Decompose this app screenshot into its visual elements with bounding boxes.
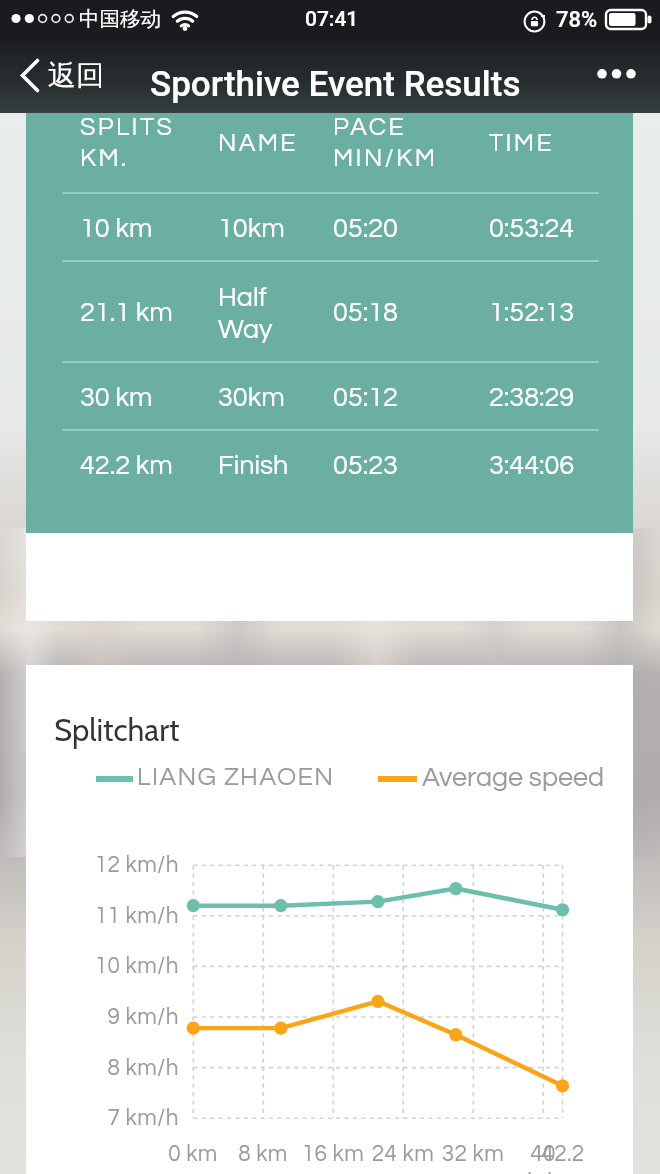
staticText: 10km bbox=[218, 215, 285, 243]
staticText: Half Way bbox=[218, 284, 273, 344]
button[interactable]: 30 km bbox=[26, 362, 633, 430]
staticText: 24 km bbox=[358, 1143, 448, 1166]
staticText: 11 km/h bbox=[66, 905, 179, 928]
staticText: 10 km bbox=[80, 215, 153, 243]
staticText: 8 km bbox=[218, 1143, 308, 1166]
staticText: 3:44:06 bbox=[489, 452, 575, 480]
other: Rotation lock bbox=[523, 10, 546, 33]
staticText: 中国移动 bbox=[79, 6, 161, 32]
staticText: Average speed bbox=[422, 764, 605, 792]
staticText: LIANG ZHAOEN bbox=[137, 764, 335, 790]
staticText: Sporthive Event Results bbox=[150, 64, 521, 105]
staticText: 42.2 km bbox=[518, 1143, 608, 1174]
staticText: 12 km/h bbox=[66, 854, 179, 877]
staticText: 16 km bbox=[288, 1143, 378, 1166]
staticText: Splitchart bbox=[54, 711, 180, 749]
staticText: 9 km/h bbox=[66, 1006, 179, 1029]
staticText: 05:23 bbox=[333, 452, 398, 480]
staticText: 32 km bbox=[428, 1143, 518, 1166]
staticText: 78% bbox=[556, 7, 598, 33]
staticText: 10 km/h bbox=[66, 955, 179, 978]
staticText: 21.1 km bbox=[80, 299, 173, 327]
staticText: 0:53:24 bbox=[489, 215, 575, 243]
button[interactable]: 返回 bbox=[0, 53, 116, 104]
staticText: Finish bbox=[218, 452, 289, 480]
staticText: 8 km/h bbox=[66, 1057, 179, 1080]
staticText: TIME bbox=[489, 130, 555, 156]
staticText: PACE MIN/KM bbox=[333, 114, 438, 172]
staticText: 05:20 bbox=[333, 215, 398, 243]
staticText: 2:38:29 bbox=[489, 384, 575, 412]
staticText: 30km bbox=[218, 384, 285, 412]
staticText: 0 km bbox=[148, 1143, 238, 1166]
staticText: 05:12 bbox=[333, 384, 398, 412]
button[interactable]: More options bbox=[580, 44, 640, 113]
staticText: 1:52:13 bbox=[489, 299, 575, 327]
button[interactable]: 21.1 km bbox=[26, 261, 633, 362]
staticText: 返回 bbox=[48, 58, 104, 93]
staticText: NAME bbox=[218, 130, 298, 156]
staticText: 42.2 km bbox=[80, 452, 173, 480]
staticText: 05:18 bbox=[333, 299, 398, 327]
button[interactable]: 10 km bbox=[26, 193, 633, 261]
staticText: 40 km bbox=[498, 1143, 588, 1174]
button[interactable]: 42.2 km bbox=[26, 430, 633, 498]
staticText: 7 km/h bbox=[66, 1107, 179, 1130]
staticText: SPLITS KM. bbox=[80, 114, 175, 172]
staticText: 30 km bbox=[80, 384, 153, 412]
staticText: 07:41 bbox=[305, 7, 359, 32]
